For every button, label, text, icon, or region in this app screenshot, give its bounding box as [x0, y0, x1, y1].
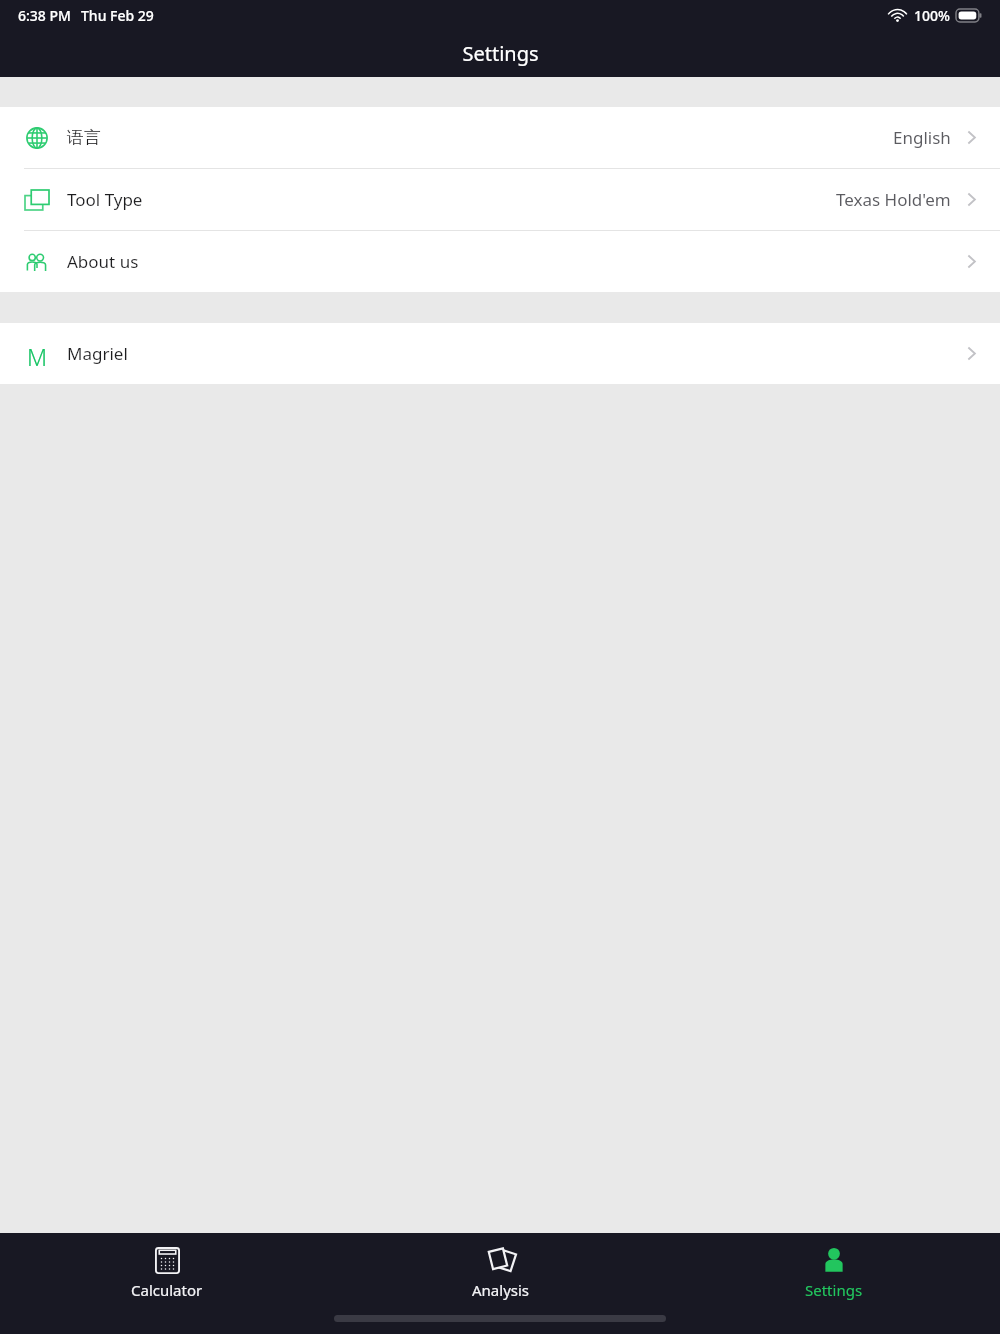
staticText: About us — [67, 250, 139, 273]
staticText: Analysis — [472, 1280, 530, 1300]
staticText: 100% — [914, 6, 950, 25]
staticText: English — [893, 126, 951, 149]
button[interactable]: Tool Type — [0, 169, 1000, 230]
button[interactable]: Analysis — [334, 1233, 667, 1312]
staticText: Settings — [805, 1280, 863, 1300]
staticText: Texas Hold'em — [836, 188, 951, 211]
staticText: 语言 — [67, 127, 101, 148]
button[interactable]: About us — [0, 231, 1000, 292]
staticText: Tool Type — [67, 188, 143, 211]
staticText: Magriel — [67, 342, 128, 365]
staticText: Thu Feb 29 — [81, 6, 154, 25]
button[interactable]: M — [0, 323, 1000, 384]
button[interactable]: 语言 — [0, 107, 1000, 168]
staticText: Calculator — [131, 1280, 203, 1300]
staticText: M — [27, 341, 48, 367]
button[interactable]: Settings — [667, 1233, 1000, 1312]
button[interactable]: Calculator — [0, 1233, 334, 1312]
staticText: Settings — [462, 40, 539, 67]
staticText: 6:38 PM — [18, 6, 71, 25]
